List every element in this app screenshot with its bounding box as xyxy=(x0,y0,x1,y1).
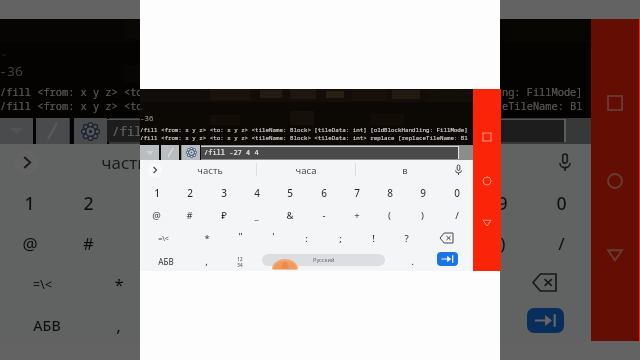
button[interactable]: 2 xyxy=(59,182,118,223)
button[interactable]: + xyxy=(340,204,373,227)
button[interactable]: @ xyxy=(0,223,59,264)
button[interactable]: ; xyxy=(326,264,385,305)
button[interactable]: Recents xyxy=(591,79,639,127)
button[interactable]: ) xyxy=(406,204,439,227)
button[interactable]: Home xyxy=(591,157,639,205)
button[interactable]: 1 xyxy=(140,181,173,204)
button[interactable]: . xyxy=(455,305,514,346)
button[interactable]: # xyxy=(59,223,118,264)
button[interactable]: ₽ xyxy=(118,223,177,264)
button[interactable]: ' xyxy=(208,260,267,301)
button[interactable]: 8 xyxy=(373,181,406,204)
button[interactable]: АБВ xyxy=(17,305,76,346)
button[interactable]: ? xyxy=(444,264,503,305)
button[interactable]: , xyxy=(89,305,148,346)
button[interactable]: Русский xyxy=(262,254,385,266)
button[interactable]: : xyxy=(290,227,323,250)
button[interactable]: @ xyxy=(140,204,173,227)
button[interactable]: & xyxy=(236,223,295,264)
button[interactable]: _ xyxy=(240,204,273,227)
button[interactable]: 6 xyxy=(296,182,355,223)
button[interactable]: часть xyxy=(41,144,206,180)
button[interactable]: More suggestions xyxy=(14,150,39,175)
button[interactable]: ; xyxy=(324,227,357,250)
button[interactable]: 5 xyxy=(236,182,295,223)
button[interactable]: / xyxy=(532,223,591,264)
button[interactable]: 7 xyxy=(355,182,414,223)
button[interactable]: Home xyxy=(473,167,500,194)
button[interactable]: 0 xyxy=(440,181,473,204)
button[interactable]: Voice input xyxy=(545,144,584,180)
button[interactable]: ! xyxy=(385,264,444,305)
button[interactable]: ( xyxy=(373,204,406,227)
button[interactable]: ! xyxy=(357,227,390,250)
button[interactable]: Backspace xyxy=(515,262,574,303)
button[interactable]: ( xyxy=(414,223,473,264)
button[interactable]: , xyxy=(190,250,223,273)
button[interactable]: ) xyxy=(473,223,532,264)
button[interactable]: + xyxy=(355,223,414,264)
button[interactable]: Enter xyxy=(437,252,458,266)
button[interactable]: Back xyxy=(591,231,639,279)
button[interactable]: * xyxy=(89,264,148,305)
button[interactable]: часа xyxy=(206,144,382,180)
button[interactable]: /fill -27 4 4 xyxy=(201,145,459,160)
staticText: - xyxy=(323,232,329,255)
button[interactable]: 4 xyxy=(240,181,273,204)
staticText: АБВ xyxy=(158,256,174,267)
button[interactable]: в xyxy=(355,160,454,180)
button[interactable]: Recents xyxy=(473,123,500,150)
button[interactable]: 1 xyxy=(0,182,59,223)
button[interactable]: Back xyxy=(473,209,500,236)
staticText: 9 xyxy=(497,191,508,215)
button[interactable]: * xyxy=(190,227,223,250)
button[interactable]: часа xyxy=(256,160,355,180)
staticText: 7 xyxy=(354,186,360,200)
button[interactable]: Settings xyxy=(74,118,107,144)
button[interactable]: / xyxy=(440,204,473,227)
button[interactable]: - xyxy=(307,204,340,227)
button[interactable]: часть xyxy=(163,160,256,180)
button[interactable]: 7 xyxy=(340,181,373,204)
button[interactable]: : xyxy=(267,264,326,305)
button[interactable]: 3 xyxy=(118,182,177,223)
button[interactable]: Voice input xyxy=(447,160,469,180)
button[interactable]: 12 34 xyxy=(223,250,256,273)
staticText: ? xyxy=(404,232,409,245)
button[interactable]: & xyxy=(273,204,306,227)
button[interactable]: History xyxy=(140,145,159,160)
button[interactable]: ₽ xyxy=(207,204,240,227)
button[interactable]: More suggestions xyxy=(148,163,162,177)
button[interactable]: 9 xyxy=(406,181,439,204)
button[interactable]: 6 xyxy=(307,181,340,204)
button[interactable]: Settings xyxy=(182,145,201,160)
button[interactable]: в xyxy=(382,144,558,180)
button[interactable]: Slash key xyxy=(161,145,180,160)
button[interactable]: " xyxy=(148,260,207,301)
button[interactable]: 9 xyxy=(473,182,532,223)
button[interactable]: ' xyxy=(257,225,290,248)
button[interactable]: Enter xyxy=(527,308,564,333)
button[interactable]: 0 xyxy=(532,182,591,223)
button[interactable]: =\< xyxy=(147,227,180,250)
button[interactable]: . xyxy=(396,250,429,273)
button[interactable]: /fill -27 4 4 xyxy=(107,118,565,144)
button[interactable]: _ xyxy=(177,223,236,264)
button[interactable]: - xyxy=(296,223,355,264)
button[interactable]: 8 xyxy=(414,182,473,223)
button[interactable]: ? xyxy=(390,227,423,250)
button[interactable]: 3 xyxy=(207,181,240,204)
button[interactable]: 4 xyxy=(177,182,236,223)
button[interactable]: Backspace xyxy=(430,226,463,249)
staticText: 0 xyxy=(454,186,460,200)
button[interactable]: =\< xyxy=(13,264,72,305)
button[interactable]: 2 xyxy=(173,181,206,204)
button[interactable]: # xyxy=(173,204,206,227)
button[interactable]: 5 xyxy=(273,181,306,204)
button[interactable]: " xyxy=(224,225,257,248)
button[interactable]: АБВ xyxy=(149,250,182,273)
